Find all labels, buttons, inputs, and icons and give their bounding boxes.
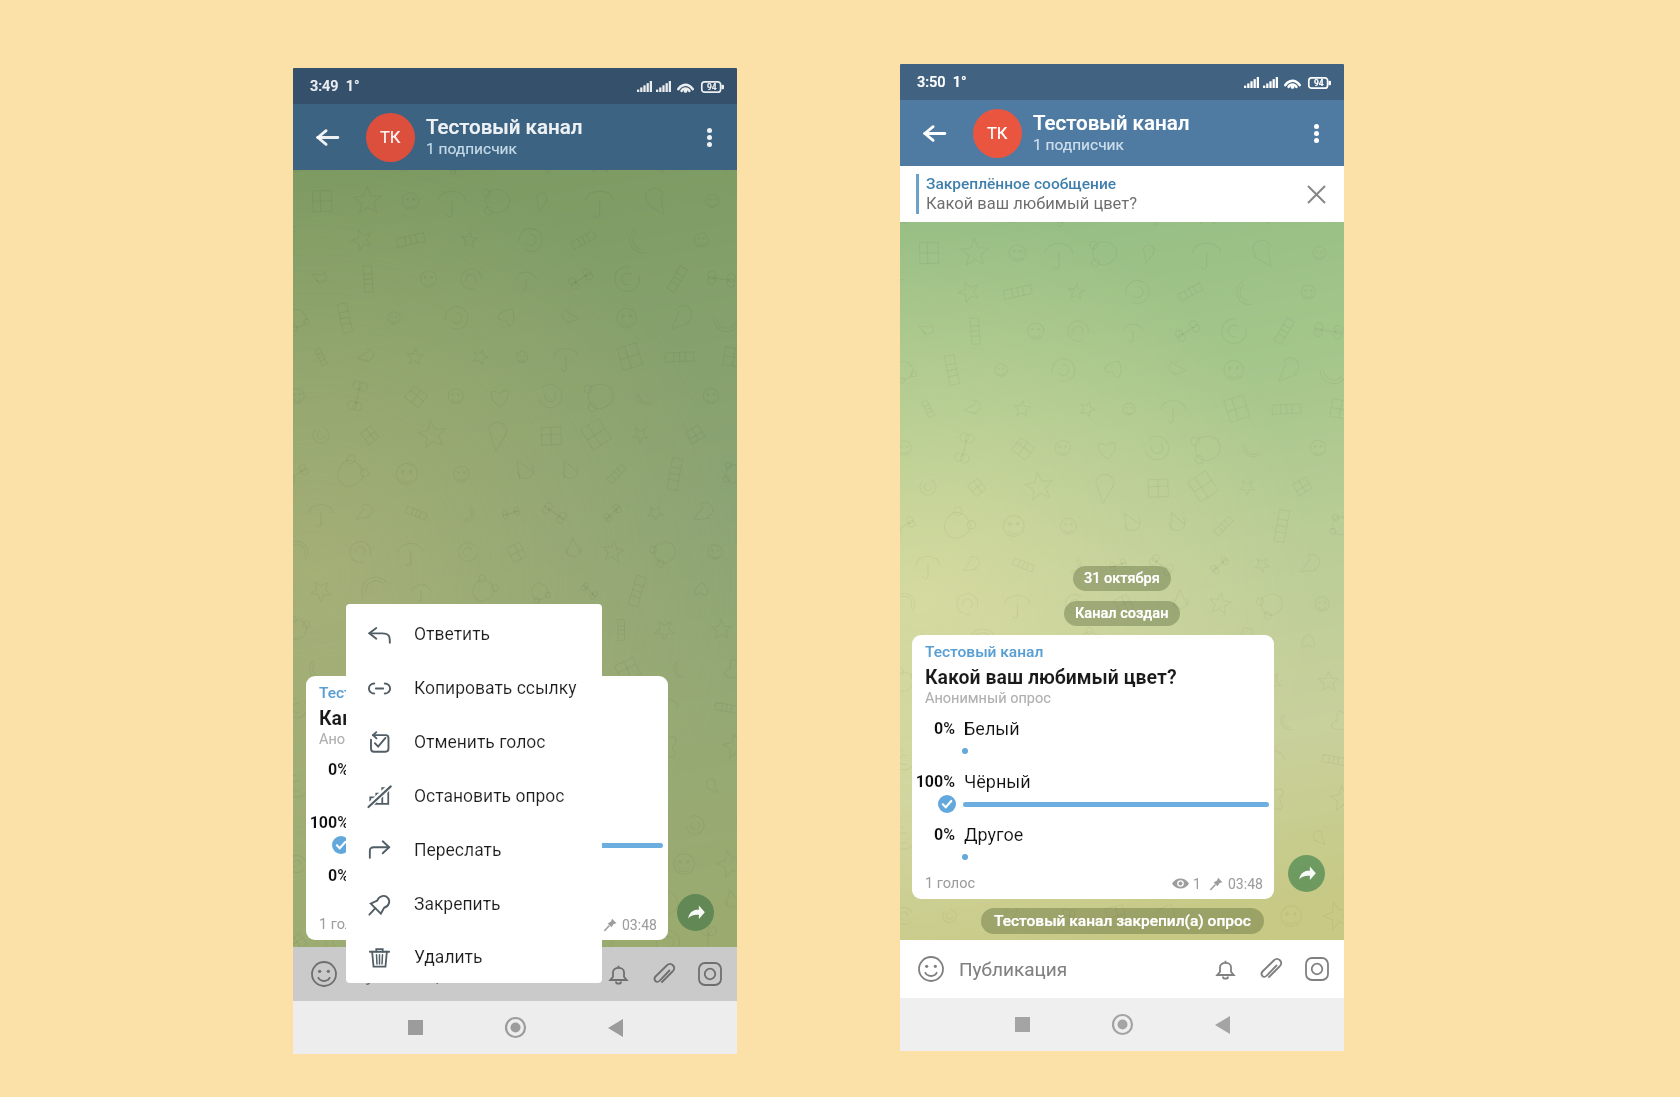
staticText: Чёрный: [964, 771, 1031, 792]
staticText: 94: [707, 82, 717, 92]
button[interactable]: ТК: [366, 113, 415, 162]
staticText: Какой ваш любимый цвет?: [926, 194, 1138, 213]
button[interactable]: Back: [1194, 998, 1250, 1051]
button[interactable]: Camera: [1294, 946, 1340, 992]
staticText: Удалить: [414, 947, 483, 968]
button[interactable]: Emoji: [906, 944, 956, 994]
button[interactable]: Share: [1288, 855, 1325, 892]
button[interactable]: Тестовый канал: [912, 635, 1274, 899]
button[interactable]: Notifications: [595, 951, 641, 997]
button[interactable]: Тестовый канал: [306, 676, 668, 940]
staticText: ТК: [380, 128, 401, 147]
button[interactable]: Home: [1094, 998, 1150, 1051]
staticText: 0%: [912, 719, 955, 738]
button[interactable]: Notifications: [1202, 946, 1248, 992]
staticText: 0%: [306, 760, 349, 779]
button[interactable]: Close pinned message: [1292, 170, 1340, 218]
button[interactable]: Тестовый канал закрепил(а) опрос: [981, 908, 1264, 934]
button[interactable]: Остановить опрос: [346, 769, 602, 823]
staticText: 3:50 1°: [917, 74, 967, 91]
staticText: 100%: [912, 772, 955, 791]
button[interactable]: 0%: [319, 865, 657, 907]
button[interactable]: 100%: [319, 812, 657, 854]
staticText: 1 подписчик: [426, 140, 517, 158]
button[interactable]: Recent apps: [387, 1001, 443, 1054]
button[interactable]: Back: [908, 107, 960, 159]
staticText: Тестовый канал закрепил(а) опрос: [994, 912, 1251, 930]
staticText: Анонимный опрос: [925, 690, 1051, 707]
button[interactable]: 0%: [925, 718, 1263, 760]
button[interactable]: ТК: [973, 109, 1022, 158]
staticText: 0%: [912, 825, 955, 844]
button[interactable]: Camera: [687, 951, 733, 997]
button[interactable]: Share: [677, 894, 714, 931]
button[interactable]: Back: [301, 111, 353, 163]
button[interactable]: Закреплённое сообщение: [900, 166, 1344, 222]
staticText: Тестовый канал: [319, 684, 438, 702]
staticText: 1 голос: [925, 875, 976, 892]
staticText: Белый: [964, 718, 1020, 739]
staticText: Отменить голос: [414, 732, 546, 753]
staticText: Закреплённое сообщение: [926, 175, 1117, 193]
staticText: Тестовый канал: [1033, 111, 1190, 135]
staticText: 03:48: [622, 917, 657, 933]
staticText: Тестовый канал: [925, 643, 1044, 661]
staticText: Копировать ссылку: [414, 678, 577, 699]
staticText: Другое: [964, 824, 1024, 845]
staticText: Публикация: [959, 958, 1068, 980]
staticText: 1 голос: [319, 916, 370, 933]
button[interactable]: Отменить голос: [346, 715, 602, 769]
button[interactable]: Закрепить: [346, 877, 602, 931]
button[interactable]: Attach: [641, 951, 687, 997]
button[interactable]: Back: [587, 1001, 643, 1054]
button[interactable]: More options: [686, 114, 732, 160]
staticText: ТК: [987, 124, 1008, 143]
button[interactable]: Канал создан: [1064, 601, 1180, 626]
button[interactable]: 0%: [319, 759, 657, 801]
staticText: Переслать: [414, 840, 502, 861]
button[interactable]: Emoji: [299, 949, 349, 999]
staticText: 94: [1314, 78, 1324, 88]
button[interactable]: Attach: [1248, 946, 1294, 992]
button[interactable]: 100%: [925, 771, 1263, 813]
staticText: 1 подписчик: [1033, 136, 1124, 154]
staticText: Тестовый канал: [426, 115, 583, 139]
staticText: Анонимный опрос: [319, 731, 445, 748]
staticText: Какой ваш любимый цвет?: [925, 666, 1177, 689]
button[interactable]: Home: [487, 1001, 543, 1054]
button[interactable]: Удалить: [346, 931, 602, 983]
button[interactable]: Переслать: [346, 823, 602, 877]
staticText: 3:49 1°: [310, 78, 360, 95]
staticText: Остановить опрос: [414, 786, 565, 807]
staticText: Ответить: [414, 624, 491, 645]
staticText: 31 октября: [1084, 570, 1160, 587]
staticText: 1: [1193, 876, 1201, 892]
staticText: Канал создан: [1075, 605, 1169, 622]
staticText: 03:48: [1228, 876, 1263, 892]
button[interactable]: More options: [1293, 110, 1339, 156]
button[interactable]: 0%: [925, 824, 1263, 866]
button[interactable]: 31 октября: [1073, 566, 1171, 591]
staticText: Публикация: [352, 963, 461, 985]
button[interactable]: Recent apps: [994, 998, 1050, 1051]
staticText: 0%: [306, 866, 349, 885]
staticText: Закрепить: [414, 894, 501, 915]
staticText: Какой ваш любимый цвет?: [319, 707, 571, 730]
button[interactable]: Копировать ссылку: [346, 661, 602, 715]
staticText: 100%: [306, 813, 349, 832]
button[interactable]: Ответить: [346, 607, 602, 661]
